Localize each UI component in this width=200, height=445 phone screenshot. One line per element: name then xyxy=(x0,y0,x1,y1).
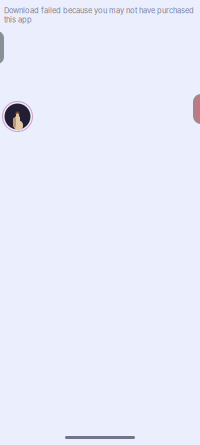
button[interactable]: Photo xyxy=(0,31,4,64)
staticText: Download failed because you may not have… xyxy=(4,6,194,24)
button[interactable]: Photo xyxy=(193,94,200,124)
button[interactable]: Story xyxy=(2,101,33,132)
